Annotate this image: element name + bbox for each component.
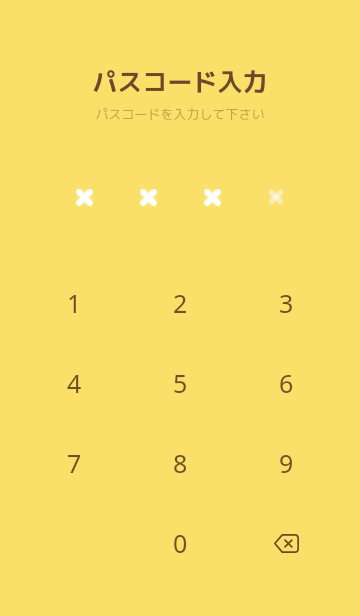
staticText: 7 xyxy=(67,446,82,480)
staticText: 8 xyxy=(173,446,188,480)
button[interactable]: 8 xyxy=(144,427,216,499)
button[interactable]: Backspace xyxy=(250,507,322,579)
button[interactable]: 0 xyxy=(144,507,216,579)
button[interactable]: 1 xyxy=(38,267,110,339)
staticText: パスコード入力 xyxy=(92,64,268,99)
staticText: パスコードを入力して下さい xyxy=(95,105,265,123)
staticText: 4 xyxy=(67,366,82,400)
staticText: 1 xyxy=(67,286,82,320)
staticText: 9 xyxy=(279,446,294,480)
button[interactable]: 7 xyxy=(38,427,110,499)
button[interactable]: 2 xyxy=(144,267,216,339)
button[interactable]: 6 xyxy=(250,347,322,419)
button[interactable]: 5 xyxy=(144,347,216,419)
staticText: 6 xyxy=(279,366,294,400)
staticText: 3 xyxy=(279,286,294,320)
button[interactable]: 9 xyxy=(250,427,322,499)
staticText: 5 xyxy=(173,366,188,400)
button[interactable]: 4 xyxy=(38,347,110,419)
button[interactable]: 3 xyxy=(250,267,322,339)
staticText: 2 xyxy=(173,286,188,320)
staticText: 0 xyxy=(173,526,188,560)
